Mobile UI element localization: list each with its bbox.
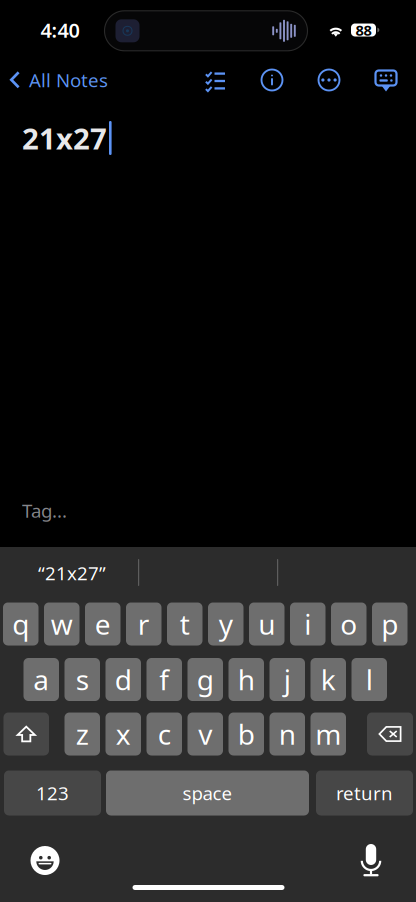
- button[interactable]: j: [269, 658, 305, 701]
- button[interactable]: h: [228, 658, 264, 701]
- staticText: u: [258, 605, 275, 643]
- button[interactable]: t: [167, 602, 202, 645]
- staticText: “21x27”: [38, 561, 106, 585]
- staticText: z: [76, 715, 89, 753]
- staticText: a: [33, 661, 49, 698]
- staticText: g: [197, 661, 214, 698]
- button[interactable]: s: [64, 658, 100, 701]
- staticText: h: [238, 661, 255, 698]
- staticText: i: [304, 605, 311, 643]
- button[interactable]: e: [85, 602, 120, 645]
- staticText: p: [381, 605, 398, 643]
- button[interactable]: More: [310, 62, 348, 98]
- button[interactable]: i: [290, 602, 325, 645]
- staticText: q: [12, 605, 29, 643]
- button[interactable]: Emoji: [28, 843, 62, 877]
- button[interactable]: Delete: [367, 712, 413, 755]
- button[interactable]: l: [351, 658, 387, 701]
- button[interactable]: 123: [4, 770, 101, 815]
- button[interactable]: Checklist: [195, 62, 235, 98]
- staticText: m: [315, 715, 341, 753]
- button[interactable]: p: [372, 602, 407, 645]
- staticText: x: [116, 715, 131, 753]
- staticText: space: [182, 781, 232, 805]
- staticText: e: [95, 605, 111, 643]
- staticText: d: [115, 661, 132, 698]
- button[interactable]: Dictation: [354, 844, 388, 878]
- button[interactable]: c: [146, 712, 182, 755]
- staticText: o: [340, 605, 357, 643]
- staticText: 88: [355, 20, 371, 40]
- button[interactable]: f: [146, 658, 182, 701]
- button[interactable]: b: [228, 712, 264, 755]
- button[interactable]: u: [249, 602, 284, 645]
- button[interactable]: m: [310, 712, 346, 755]
- button[interactable]: a: [23, 658, 59, 701]
- staticText: Tag...: [22, 498, 67, 523]
- button[interactable]: g: [187, 658, 223, 701]
- button[interactable]: o: [331, 602, 366, 645]
- button[interactable]: q: [3, 602, 38, 645]
- button[interactable]: “21x27”: [0, 549, 144, 597]
- button[interactable]: v: [187, 712, 223, 755]
- staticText: 21x27: [22, 118, 107, 157]
- staticText: l: [366, 661, 373, 698]
- staticText: All Notes: [29, 68, 108, 92]
- button[interactable]: Info: [253, 62, 291, 98]
- staticText: 4:40: [40, 17, 79, 43]
- staticText: return: [336, 781, 393, 805]
- button[interactable]: return: [316, 770, 413, 815]
- staticText: y: [219, 605, 233, 643]
- button[interactable]: All Notes: [2, 62, 116, 98]
- button[interactable]: k: [310, 658, 346, 701]
- staticText: c: [158, 715, 171, 753]
- button[interactable]: y: [208, 602, 243, 645]
- button[interactable]: space: [106, 770, 309, 815]
- staticText: b: [238, 715, 255, 753]
- button[interactable]: Hide Keyboard: [367, 63, 405, 99]
- staticText: k: [321, 661, 336, 698]
- staticText: r: [138, 605, 150, 643]
- button[interactable]: n: [269, 712, 305, 755]
- staticText: w: [51, 605, 73, 643]
- button[interactable]: d: [105, 658, 141, 701]
- staticText: s: [76, 661, 89, 698]
- button[interactable]: Shift: [3, 712, 49, 755]
- staticText: v: [198, 715, 212, 753]
- staticText: 123: [36, 781, 69, 805]
- button[interactable]: x: [105, 712, 141, 755]
- staticText: f: [159, 661, 169, 698]
- button[interactable]: r: [126, 602, 161, 645]
- button[interactable]: w: [44, 602, 79, 645]
- staticText: n: [279, 715, 296, 753]
- staticText: j: [284, 661, 291, 698]
- staticText: t: [180, 605, 190, 643]
- button[interactable]: z: [64, 712, 100, 755]
